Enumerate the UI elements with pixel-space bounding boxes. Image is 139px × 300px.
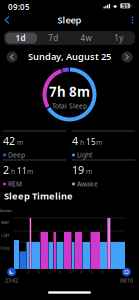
staticText: m bbox=[15, 138, 23, 147]
button[interactable]: Back bbox=[2, 14, 12, 26]
staticText: h bbox=[78, 138, 86, 147]
staticText: Light bbox=[77, 151, 92, 159]
staticText: 2 bbox=[3, 163, 9, 177]
staticText: m bbox=[27, 167, 33, 176]
staticText: REM bbox=[1, 220, 9, 225]
staticText: 7h 8m bbox=[49, 83, 90, 100]
staticText: 1d bbox=[15, 33, 25, 43]
staticText: 42 bbox=[3, 134, 15, 148]
button[interactable]: 4w bbox=[69, 31, 102, 45]
staticText: 7d bbox=[48, 33, 58, 43]
staticText: Deep bbox=[0, 245, 9, 251]
button[interactable]: More options bbox=[127, 14, 137, 26]
button[interactable]: Previous day bbox=[6, 51, 17, 62]
staticText: Awake bbox=[77, 180, 98, 188]
staticText: Sleep bbox=[57, 14, 81, 26]
staticText: REM bbox=[8, 180, 22, 188]
staticText: 51 bbox=[122, 2, 128, 9]
staticText: 4 bbox=[72, 134, 78, 148]
button[interactable]: 7d bbox=[37, 31, 70, 45]
staticText: 11 bbox=[17, 166, 27, 176]
button[interactable]: 1d bbox=[4, 31, 37, 45]
staticText: 1y bbox=[114, 33, 123, 43]
staticText: Deep bbox=[8, 151, 25, 159]
staticText: h bbox=[9, 167, 17, 176]
staticText: 19 bbox=[72, 163, 84, 177]
staticText: Total Sleep bbox=[52, 101, 87, 110]
staticText: 15 bbox=[86, 137, 96, 147]
staticText: Sunday, August 25 bbox=[28, 50, 111, 63]
staticText: Light bbox=[1, 232, 9, 238]
staticText: 08:10 bbox=[120, 277, 133, 284]
staticText: 09:05 bbox=[8, 2, 30, 12]
staticText: Sleep Timeline bbox=[4, 190, 73, 202]
button[interactable]: 1y bbox=[102, 31, 135, 45]
staticText: 23:42 bbox=[5, 277, 18, 284]
staticText: 4w bbox=[80, 33, 91, 43]
staticText: m bbox=[84, 167, 92, 176]
staticText: m bbox=[96, 138, 102, 147]
staticText: Awake bbox=[0, 208, 12, 213]
button[interactable]: Next day bbox=[121, 51, 132, 62]
